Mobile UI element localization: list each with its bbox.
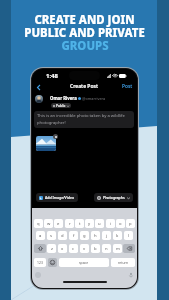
button[interactable]: k [113,231,122,240]
button[interactable]: 123 [34,258,46,267]
staticText: Omar Rivera [50,95,77,101]
staticText: q [37,221,40,227]
button[interactable]: Back [33,82,43,92]
staticText: 1:48 [46,72,58,80]
button[interactable]: a [36,231,45,240]
button[interactable]: space [59,258,109,267]
button[interactable]: Public [51,103,71,108]
staticText: w [47,221,51,227]
staticText: k [116,233,119,239]
staticText: Post [122,83,133,90]
staticText: d [61,233,64,239]
button[interactable]: u [95,219,104,228]
staticText: i [110,221,112,227]
button[interactable]: n [102,244,111,253]
staticText: n [105,246,108,252]
button[interactable]: t [75,219,84,228]
button[interactable]: e [54,219,63,228]
staticText: Create Post [70,83,99,90]
staticText: h [94,233,97,239]
button[interactable]: Change keyboard [35,272,41,278]
button[interactable]: y [85,219,94,228]
button[interactable]: g [80,231,89,240]
staticText: y [88,221,91,227]
button[interactable]: Dictation [128,272,134,278]
button[interactable]: Photographs [94,193,133,202]
button[interactable]: j [102,231,111,240]
button[interactable]: i [106,219,115,228]
staticText: z [51,246,53,252]
button[interactable]: Shift [34,244,46,253]
staticText: GROUPS [61,38,109,54]
staticText: v [83,246,86,252]
staticText: t [79,221,81,227]
staticText: PUBLIC AND PRIVATE [24,25,145,41]
staticText: l [128,233,130,239]
button[interactable]: Post [118,81,137,92]
staticText: Add Image/Video [45,195,75,200]
button[interactable]: l [124,231,133,240]
button[interactable]: c [69,244,78,253]
button[interactable]: return [111,258,135,267]
button[interactable]: f [69,231,78,240]
staticText: CREATE AND JOIN [34,12,135,28]
staticText: u [98,221,101,227]
button[interactable]: v [80,244,89,253]
staticText: s [50,233,53,239]
staticText: @omarrivera [82,96,106,101]
staticText: Photographs [103,195,125,200]
staticText: x [61,246,64,252]
button[interactable]: r [65,219,74,228]
staticText: space [79,260,89,265]
button[interactable]: w [44,219,53,228]
button[interactable]: d [58,231,67,240]
button[interactable]: Remove image [53,134,58,139]
button[interactable]: x [58,244,67,253]
button[interactable]: q [34,219,43,228]
button[interactable]: p [126,219,135,228]
staticText: return [118,260,129,265]
staticText: Public [56,104,66,108]
button[interactable]: z [47,244,56,253]
button[interactable]: h [91,231,100,240]
staticText: This is an incredible photo taken by a w… [37,113,131,125]
staticText: p [129,221,132,227]
staticText: f [73,233,75,239]
staticText: m [116,246,120,252]
staticText: a [39,233,42,239]
staticText: 123 [37,260,43,265]
button[interactable]: b [91,244,100,253]
staticText: b [94,246,97,252]
staticText: e [57,221,60,227]
staticText: j [106,233,108,239]
staticText: r [69,221,71,227]
button[interactable]: s [47,231,56,240]
staticText: g [83,233,86,239]
button[interactable]: Add Image/Video [36,193,78,202]
button[interactable]: Backspace [123,244,135,253]
button[interactable]: m [113,244,122,253]
staticText: c [72,246,75,252]
button[interactable]: Emoji [48,258,57,267]
button[interactable]: o [116,219,125,228]
staticText: o [119,221,122,227]
